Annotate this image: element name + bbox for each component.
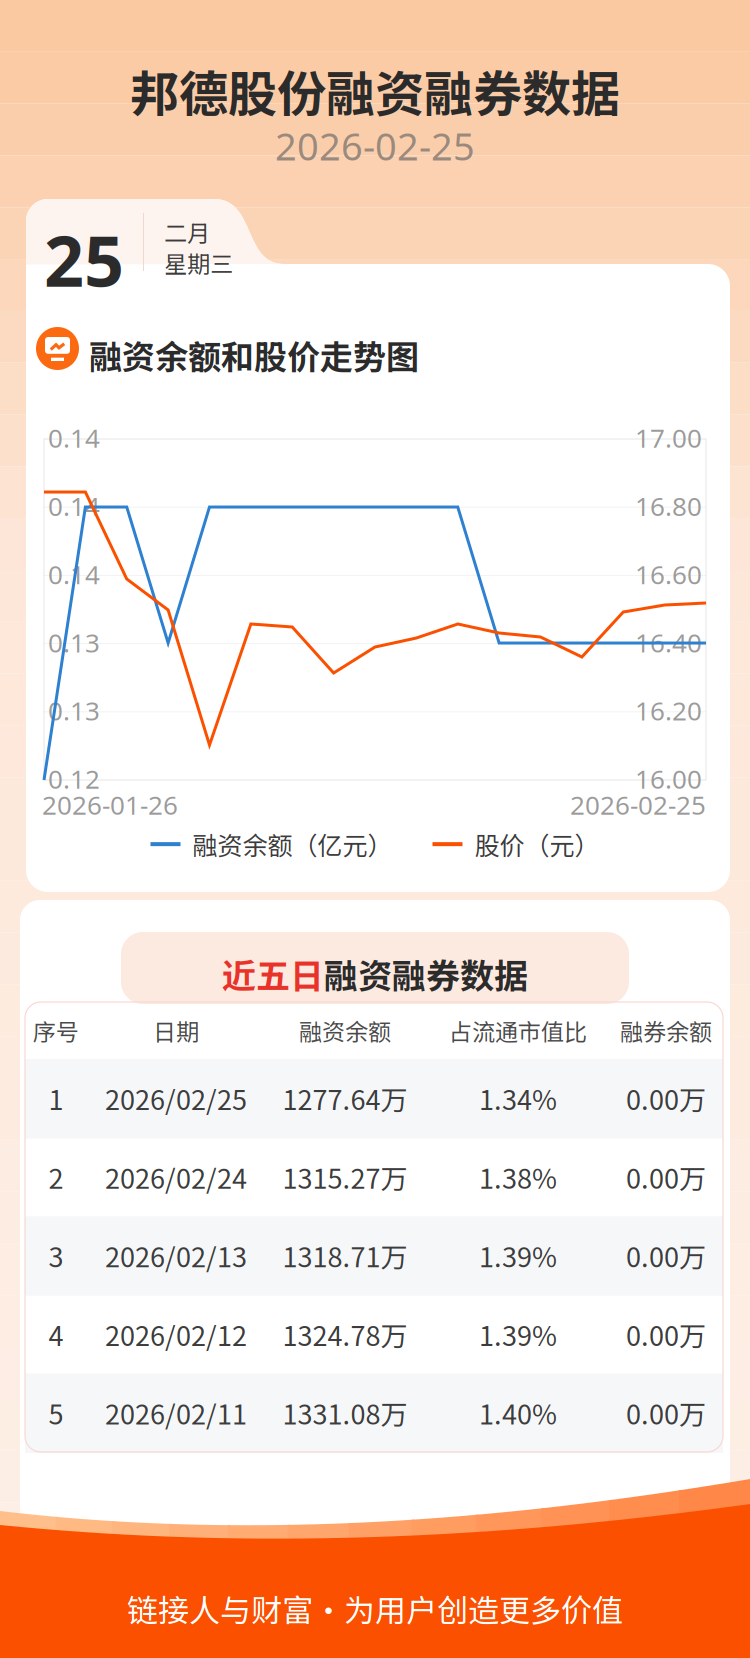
staticText: 邦德股份融资融券数据 xyxy=(130,55,620,126)
staticText: 1.39% xyxy=(479,1314,557,1354)
staticText: 16.20 xyxy=(635,693,702,728)
staticText: 2026/02/11 xyxy=(105,1393,247,1432)
staticText: 0.14 xyxy=(48,488,100,524)
staticText: 占流通市值比 xyxy=(449,1014,587,1047)
staticText: 16.60 xyxy=(635,556,702,592)
staticText: 2026/02/24 xyxy=(105,1157,247,1196)
staticText: 2026/02/12 xyxy=(105,1314,247,1354)
staticText: 0.00万 xyxy=(626,1157,706,1196)
staticText: 融资余额（亿元） xyxy=(192,826,392,862)
staticText: 4 xyxy=(48,1314,63,1354)
staticText: 3 xyxy=(48,1236,63,1275)
staticText: 0.14 xyxy=(48,420,100,455)
staticText: 融资余额和股价走势图 xyxy=(89,331,419,379)
staticText: 1.34% xyxy=(479,1079,557,1118)
staticText: 16.00 xyxy=(635,761,702,796)
staticText: 融券余额 xyxy=(620,1014,712,1047)
staticText: 1.40% xyxy=(479,1393,557,1432)
staticText: 0.00万 xyxy=(626,1236,706,1275)
staticText: 星期三 xyxy=(164,246,233,279)
staticText: 2026/02/13 xyxy=(105,1236,247,1275)
staticText: 5 xyxy=(48,1393,63,1432)
staticText: 0.00万 xyxy=(626,1314,706,1354)
staticText: 17.00 xyxy=(635,420,702,455)
staticText: 链接人与财富·为用户创造更多价值 xyxy=(127,1586,623,1631)
staticText: 1318.71万 xyxy=(282,1236,407,1275)
staticText: 2026-02-25 xyxy=(275,120,475,172)
staticText: 1 xyxy=(48,1079,63,1118)
staticText: 日期 xyxy=(153,1014,199,1047)
staticText: 2 xyxy=(48,1157,63,1196)
staticText: 0.00万 xyxy=(626,1393,706,1432)
staticText: 融资融券数据 xyxy=(324,949,528,998)
staticText: 1.38% xyxy=(479,1157,557,1196)
staticText: 二月 xyxy=(164,215,210,248)
staticText: 1324.78万 xyxy=(282,1314,407,1354)
staticText: 序号 xyxy=(33,1014,79,1047)
staticText: 融资余额 xyxy=(299,1014,391,1047)
staticText: 16.80 xyxy=(635,488,702,524)
staticText: 2026/02/25 xyxy=(105,1079,247,1118)
staticText: 25 xyxy=(44,212,124,307)
staticText: 0.12 xyxy=(48,761,100,796)
staticText: 0.13 xyxy=(48,693,100,728)
staticText: 1.39% xyxy=(479,1236,557,1275)
staticText: 1277.64万 xyxy=(282,1079,407,1118)
staticText: 2026-02-25 xyxy=(570,787,706,822)
staticText: 1315.27万 xyxy=(282,1157,407,1196)
staticText: 2026-01-26 xyxy=(42,787,178,822)
button[interactable]: 25 xyxy=(0,0,750,1658)
staticText: 0.00万 xyxy=(626,1079,706,1118)
staticText: 0.13 xyxy=(48,625,100,660)
staticText: 1331.08万 xyxy=(282,1393,407,1432)
staticText: 近五日 xyxy=(222,949,324,998)
staticText: 股价（元） xyxy=(474,826,599,862)
staticText: 0.14 xyxy=(48,556,100,592)
staticText: 16.40 xyxy=(635,625,702,660)
